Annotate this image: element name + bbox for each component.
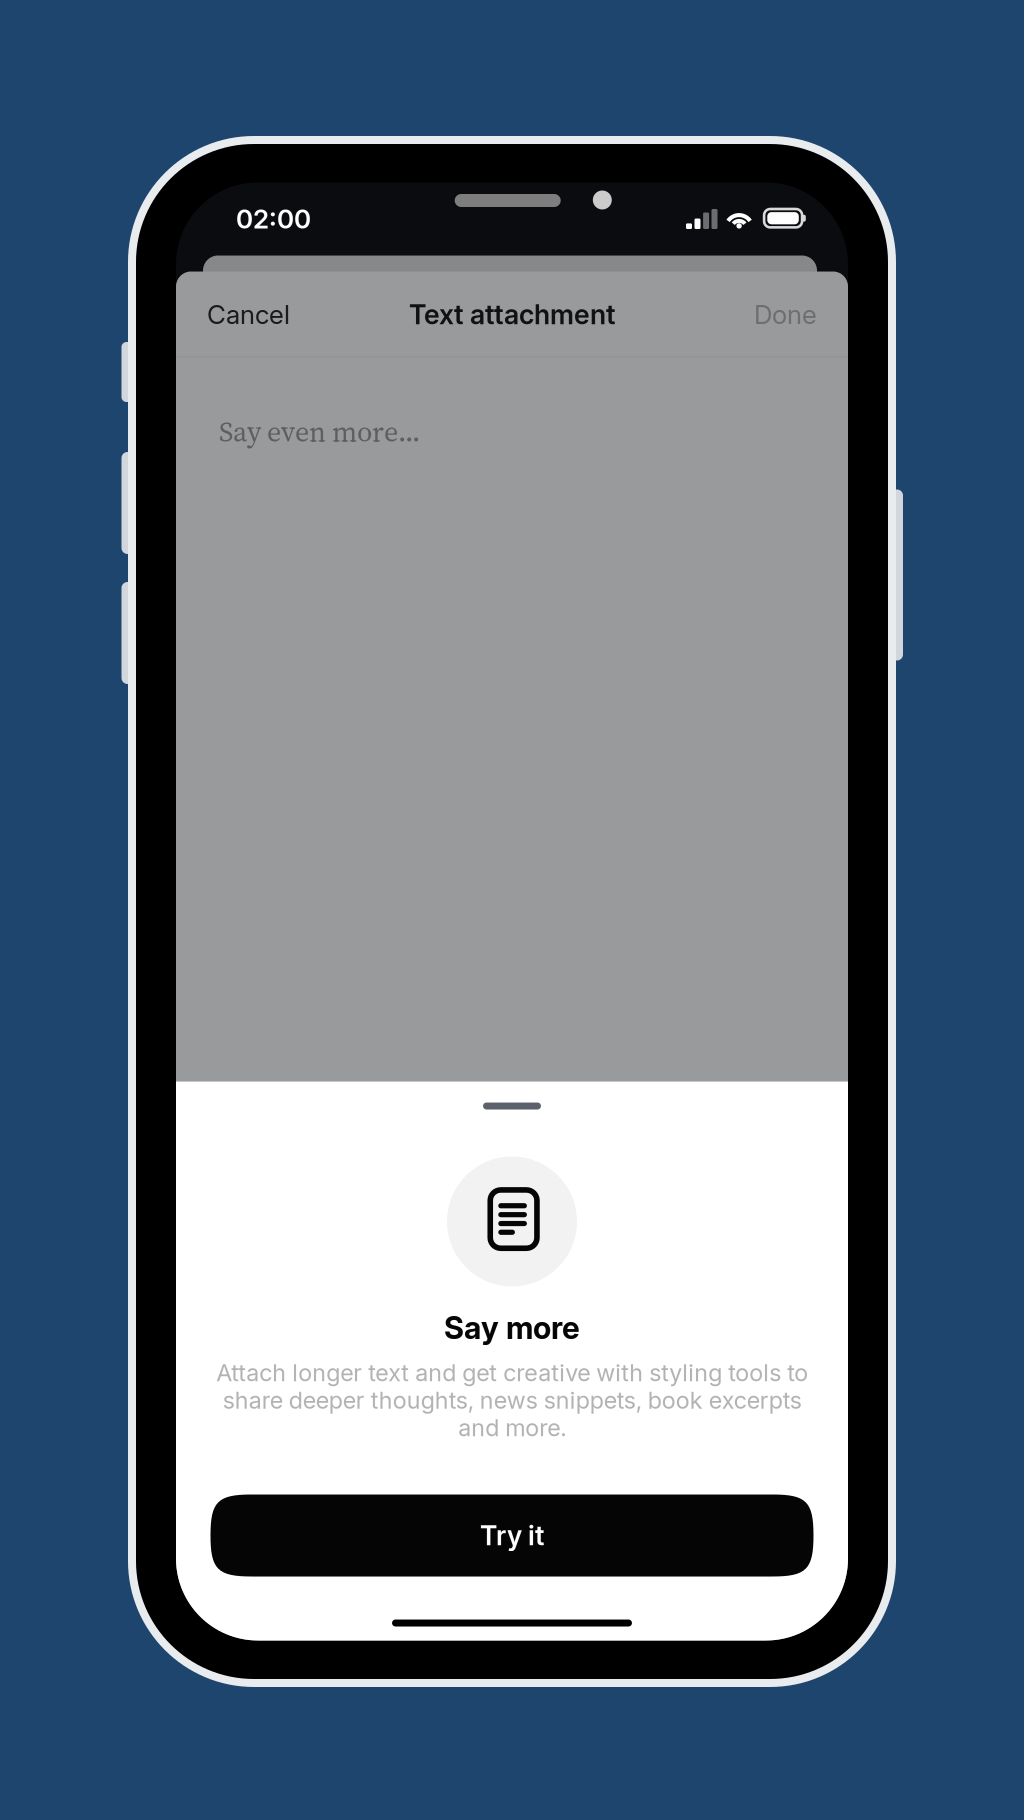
staticText: Cancel — [207, 299, 290, 330]
button[interactable]: Done — [754, 299, 817, 330]
staticText: Done — [754, 299, 817, 330]
staticText: Try it — [480, 1519, 544, 1552]
staticText: Text attachment — [409, 298, 615, 331]
button[interactable]: Try it — [210, 1494, 813, 1576]
staticText: Say even more... — [219, 412, 420, 451]
button[interactable]: Cancel — [207, 299, 290, 330]
staticText: Say more — [444, 1309, 580, 1346]
staticText: 02:00 — [236, 203, 311, 235]
staticText: Attach longer text and get creative with… — [216, 1358, 808, 1442]
